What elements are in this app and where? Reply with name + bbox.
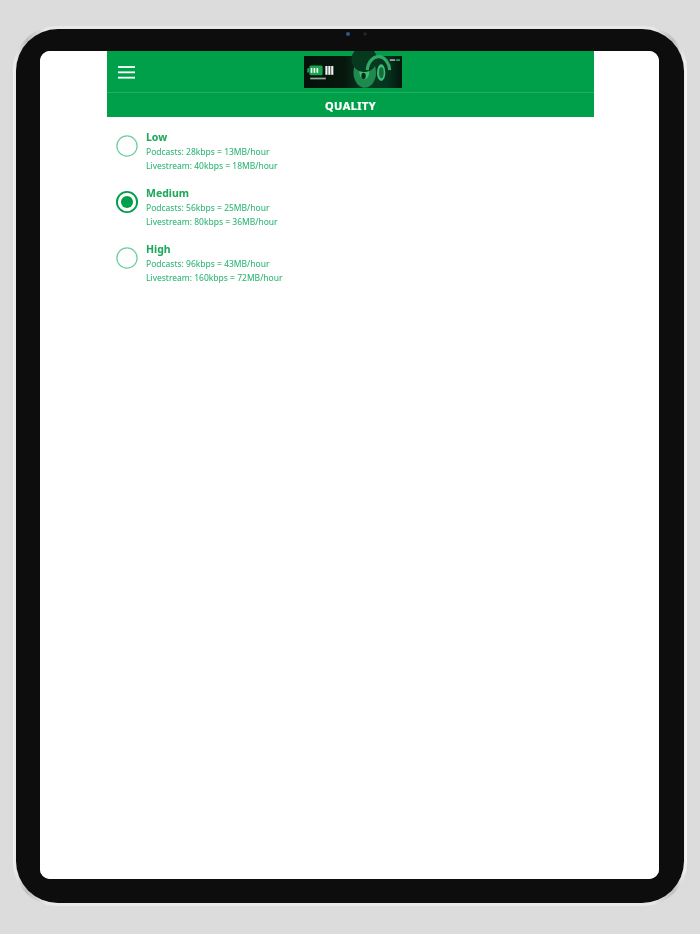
staticText: Livestream: 80kbps = 36MB/hour <box>146 216 278 228</box>
staticText: Podcasts: 56kbps = 25MB/hour <box>146 202 270 214</box>
staticText: Low <box>146 130 168 144</box>
staticText: Podcasts: 28kbps = 13MB/hour <box>146 146 270 158</box>
button[interactable]: High <box>107 238 594 286</box>
staticText: Medium <box>146 186 190 200</box>
staticText: Podcasts: 96kbps = 43MB/hour <box>146 258 270 270</box>
button[interactable]: Open navigation menu <box>112 58 140 86</box>
staticText: Livestream: 40kbps = 18MB/hour <box>146 160 278 172</box>
button[interactable]: Low <box>107 126 594 174</box>
button[interactable]: MIX 93.8 home <box>304 56 402 88</box>
staticText: Livestream: 160kbps = 72MB/hour <box>146 272 283 284</box>
staticText: QUALITY <box>325 98 376 113</box>
staticText: High <box>146 242 171 256</box>
button[interactable]: Medium <box>107 182 594 230</box>
